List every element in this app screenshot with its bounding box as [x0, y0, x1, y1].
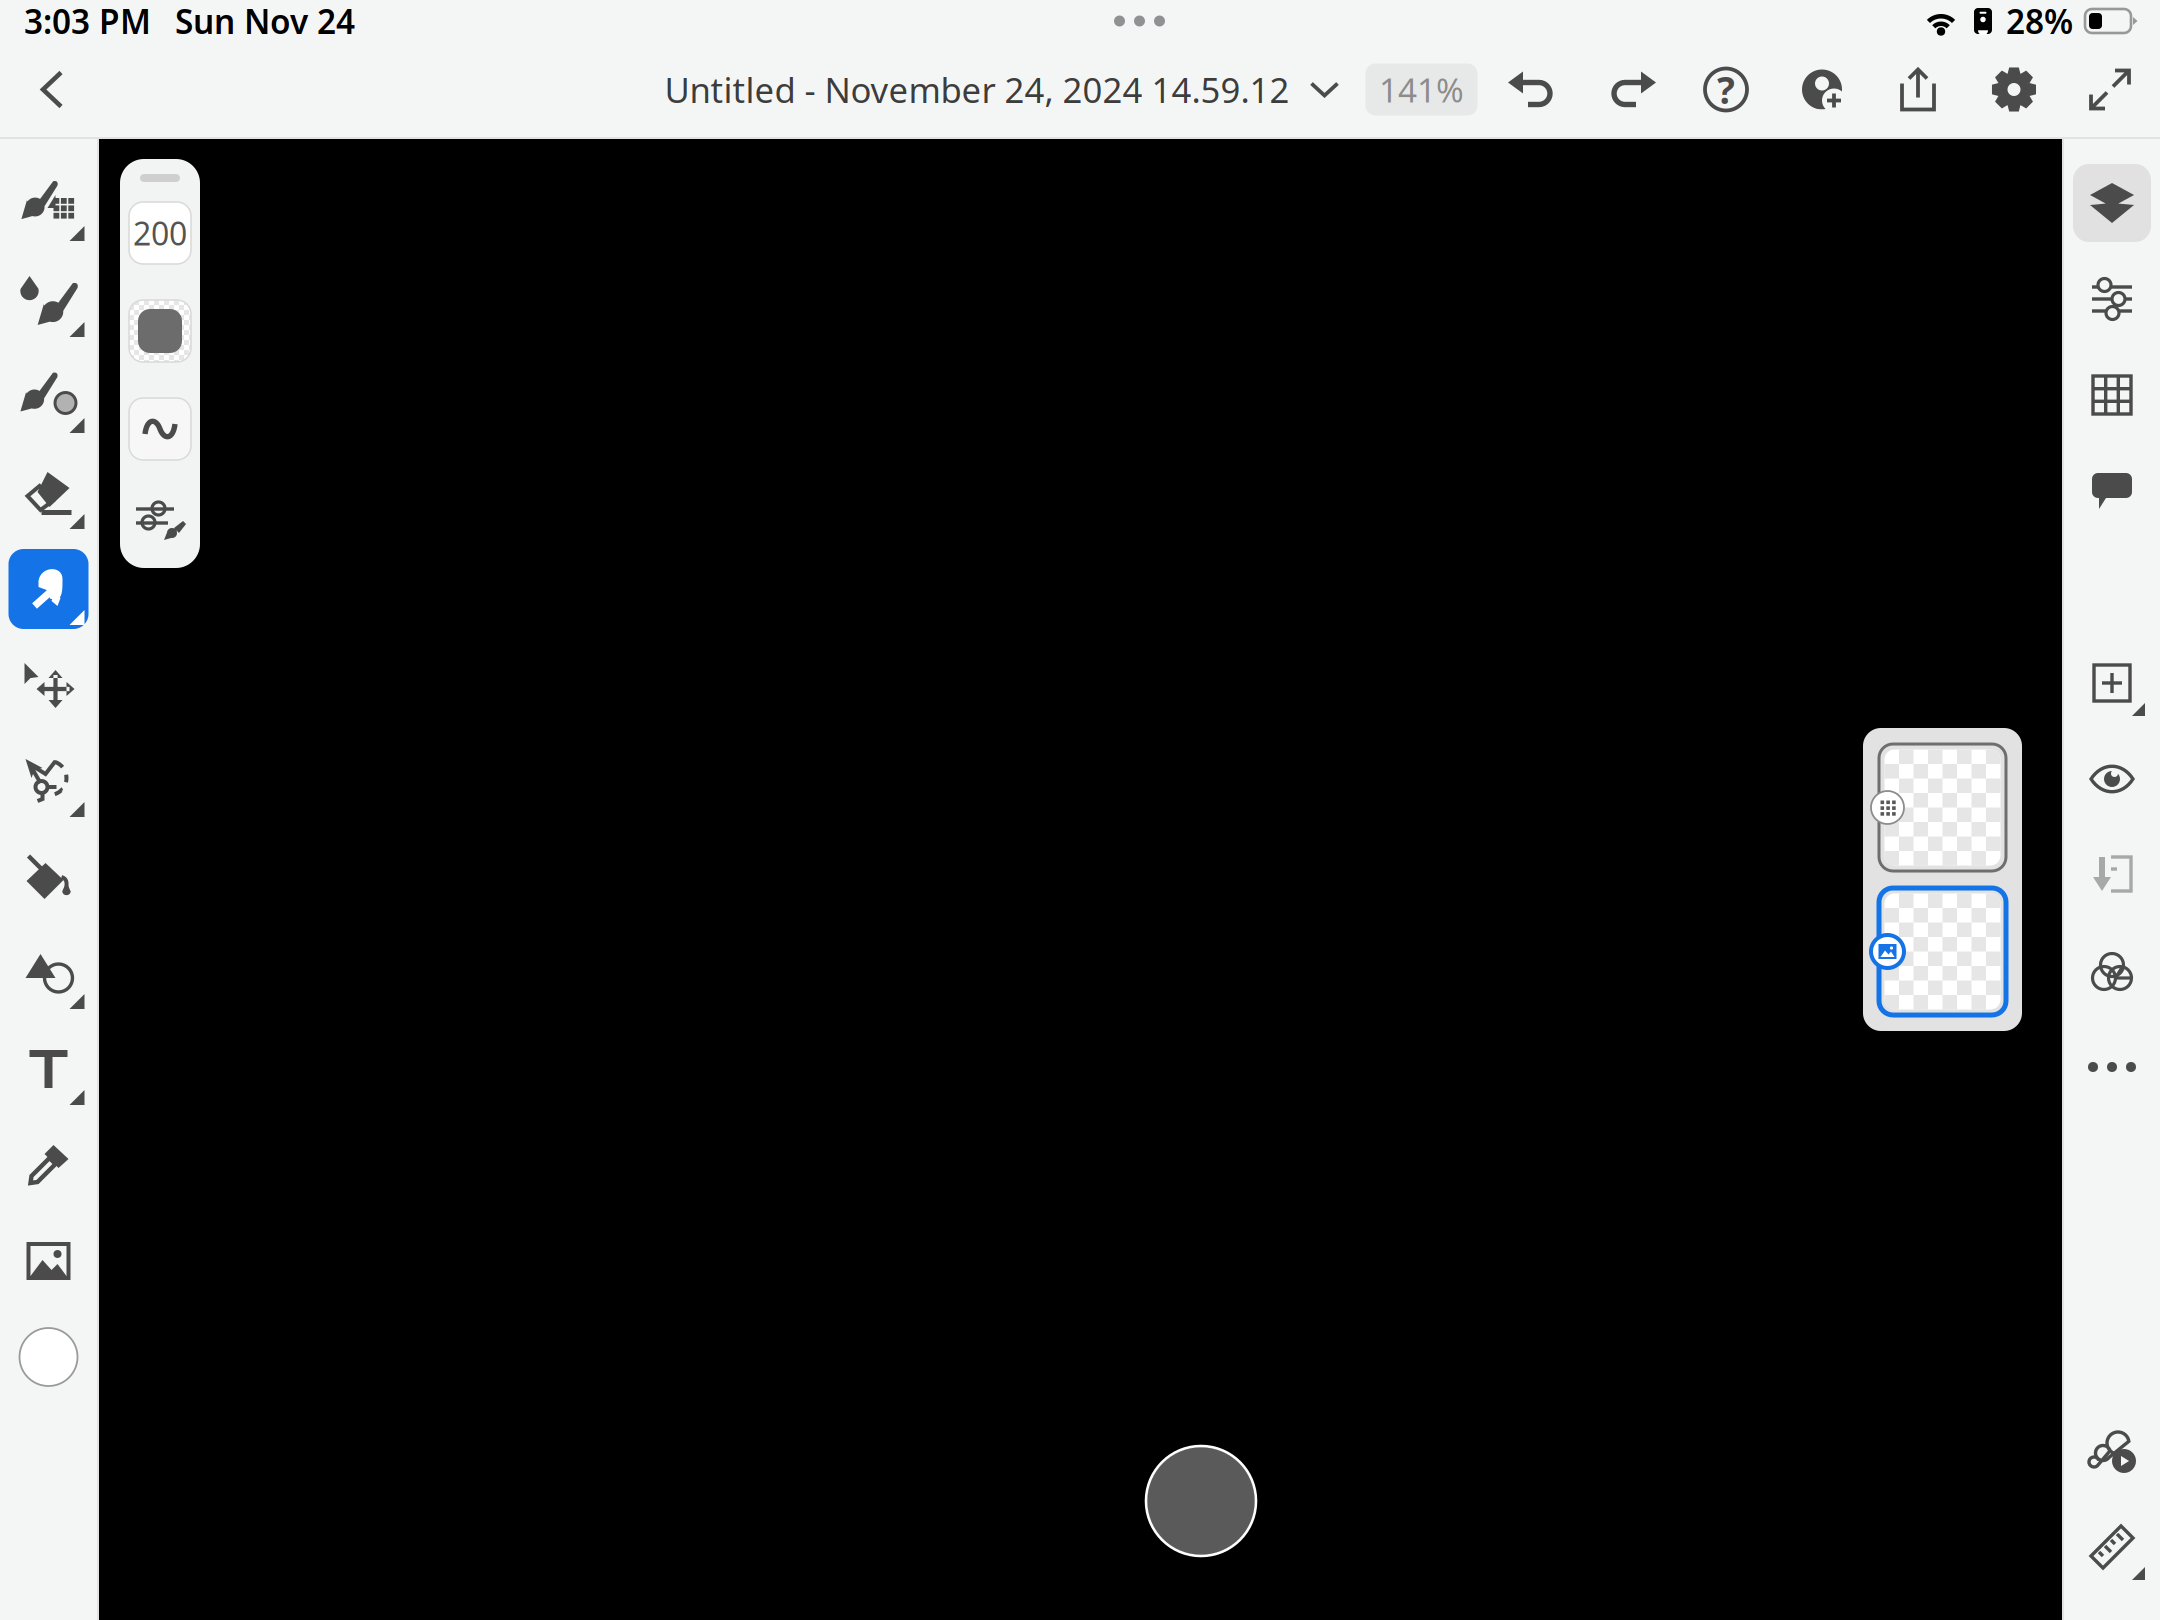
button[interactable]: Colour	[129, 300, 191, 362]
button[interactable]: Ruler	[2064, 1507, 2160, 1587]
button[interactable]: Insert image	[8, 1221, 88, 1301]
button[interactable]: Vector brush	[8, 357, 88, 437]
button[interactable]: Share	[1870, 53, 1966, 125]
button[interactable]: Smudge	[8, 549, 88, 629]
button[interactable]: Pixel brush	[8, 165, 88, 245]
button[interactable]: Live brush	[8, 261, 88, 341]
button[interactable]: Invite	[1774, 53, 1870, 125]
button[interactable]: Add layer	[2064, 643, 2160, 723]
button[interactable]: Eyedropper	[8, 1125, 88, 1205]
staticText: Untitled - November 24, 2024 14.59.12	[664, 66, 1289, 112]
button[interactable]: Layer properties	[2064, 259, 2160, 339]
staticText: Sun Nov 24	[175, 0, 355, 43]
button[interactable]: Shape	[8, 933, 88, 1013]
staticText: ?	[1717, 65, 1735, 114]
staticText: 3:03 PM	[24, 0, 151, 43]
button[interactable]: Time-lapse	[2064, 1411, 2160, 1491]
button[interactable]: More	[2064, 1027, 2160, 1107]
button[interactable]: Lasso select	[8, 741, 88, 821]
staticText: 200	[133, 212, 187, 254]
button[interactable]: Back	[16, 53, 88, 125]
button[interactable]: Fill	[8, 837, 88, 917]
button[interactable]: Comments	[2064, 451, 2160, 531]
button[interactable]: Zoom level 141 percent	[1365, 63, 1477, 115]
button[interactable]: Settings	[1966, 53, 2062, 125]
button[interactable]: Layer 1, selected	[1871, 888, 2014, 1015]
button[interactable]: Transform	[8, 645, 88, 725]
button[interactable]: Full screen	[2062, 53, 2158, 125]
staticText: 28%	[2006, 0, 2073, 43]
button[interactable]: Brush settings	[132, 496, 188, 544]
button[interactable]: Layer 2	[1871, 744, 2014, 871]
button[interactable]: Brush size	[129, 202, 191, 264]
staticText: 141%	[1379, 67, 1464, 112]
button[interactable]: Help	[1678, 53, 1774, 125]
button[interactable]: Redo	[1582, 53, 1678, 125]
button[interactable]: Layers	[2064, 163, 2160, 243]
button[interactable]: Colour	[8, 1317, 88, 1397]
button[interactable]: Smoothing	[129, 398, 191, 460]
button[interactable]: Untitled - November 24, 2024 14.59.12	[664, 53, 1339, 125]
button[interactable]: Blend mode	[2064, 931, 2160, 1011]
button[interactable]: Text	[8, 1029, 88, 1109]
button[interactable]: Merge down	[2064, 835, 2160, 915]
button[interactable]: Eraser	[8, 453, 88, 533]
button[interactable]: Undo	[1486, 53, 1582, 125]
button[interactable]: Visibility	[2064, 739, 2160, 819]
button[interactable]: Grid	[2064, 355, 2160, 435]
